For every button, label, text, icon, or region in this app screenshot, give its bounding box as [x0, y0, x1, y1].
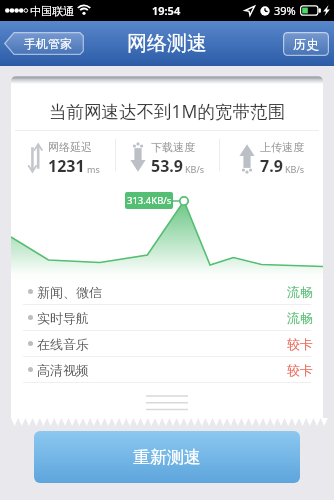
staticText: 重新测速 — [133, 447, 201, 468]
staticText: 上传速度 — [260, 140, 304, 154]
staticText: 历史 — [293, 36, 319, 52]
staticText: 流畅 — [287, 284, 313, 300]
staticText: KB/s — [285, 163, 305, 175]
staticText: 手机管家 — [24, 36, 72, 51]
button[interactable]: 实时导航 — [11, 305, 323, 330]
staticText: 新闻、微信 — [37, 284, 102, 300]
staticText: 中国联通 — [30, 4, 74, 18]
button[interactable]: 新闻、微信 — [11, 279, 323, 304]
staticText: 实时导航 — [37, 310, 89, 326]
button[interactable]: 在线音乐 — [11, 331, 323, 356]
staticText: 53.9 — [151, 155, 183, 177]
staticText: 7.9 — [260, 155, 283, 177]
staticText: 流畅 — [287, 310, 313, 326]
staticText: 高清视频 — [37, 362, 89, 378]
staticText: 网络延迟 — [48, 140, 92, 154]
staticText: 39% — [274, 3, 296, 18]
staticText: 下载速度 — [151, 140, 195, 154]
staticText: 19:54 — [152, 3, 181, 18]
staticText: 网络测速 — [127, 31, 207, 56]
button[interactable]: 历史 — [283, 32, 329, 56]
staticText: 1231 — [48, 155, 85, 177]
staticText: 较卡 — [287, 362, 313, 378]
staticText: ms — [87, 163, 100, 175]
staticText: 当前网速达不到1M的宽带范围 — [49, 99, 285, 123]
staticText: 313.4KB/s — [127, 194, 172, 207]
staticText: 较卡 — [287, 336, 313, 352]
button[interactable]: 重新测速 — [34, 431, 300, 483]
button[interactable]: 高清视频 — [11, 357, 323, 382]
button[interactable]: 手机管家 — [4, 32, 84, 55]
staticText: 在线音乐 — [37, 336, 89, 352]
staticText: KB/s — [185, 163, 205, 175]
